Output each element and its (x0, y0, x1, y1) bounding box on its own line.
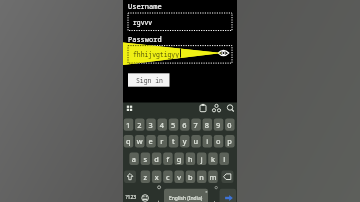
button[interactable]: Password field (128, 45, 232, 62)
button[interactable]: Sign in (128, 72, 169, 88)
button[interactable]: Show password (218, 47, 230, 59)
button[interactable]: Username field (128, 13, 232, 30)
